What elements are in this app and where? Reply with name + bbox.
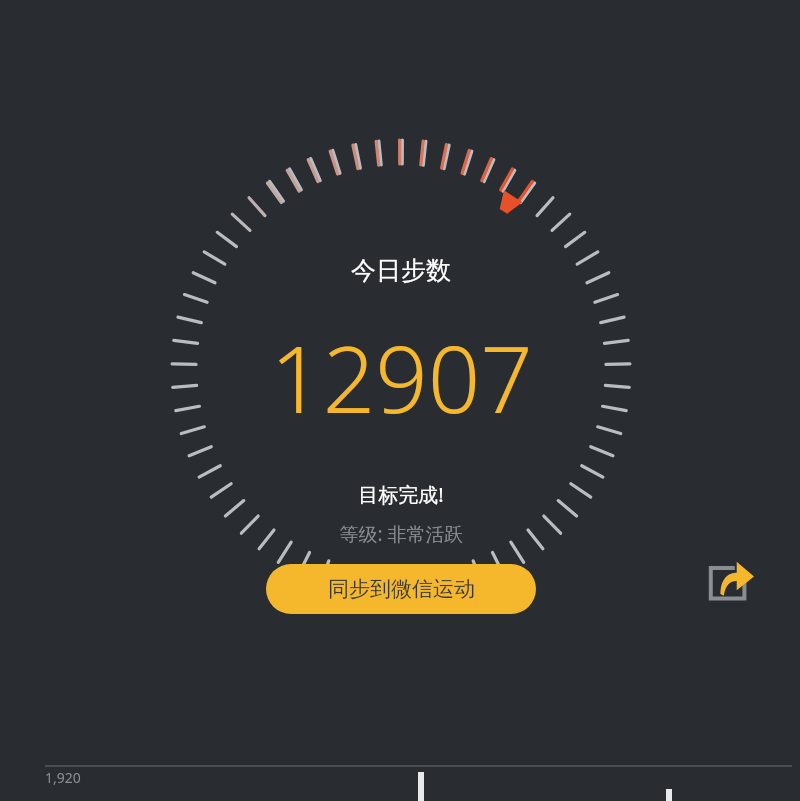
staticText: 同步到微信运动 <box>328 576 475 602</box>
staticText: 12907 <box>270 315 533 440</box>
staticText: 今日步数 <box>351 255 451 286</box>
staticText: 1,920 <box>45 768 81 787</box>
staticText: 等级: 非常活跃 <box>339 521 464 547</box>
button[interactable]: Share <box>706 558 754 604</box>
button[interactable]: 同步到微信运动 <box>266 564 536 614</box>
staticText: 目标完成! <box>358 481 444 508</box>
